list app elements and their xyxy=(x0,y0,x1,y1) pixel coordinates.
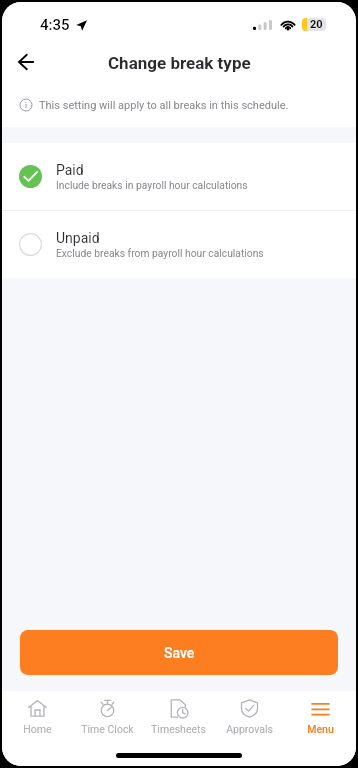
button[interactable]: Time Clock xyxy=(72,691,143,743)
staticText: Save xyxy=(164,645,195,661)
staticText: Time Clock xyxy=(81,723,134,735)
staticText: Change break type xyxy=(108,53,251,73)
staticText: Timesheets xyxy=(151,723,206,735)
staticText: Paid xyxy=(56,162,84,178)
button[interactable]: Approvals xyxy=(214,691,285,743)
button[interactable]: Home xyxy=(2,691,72,743)
staticText: Unpaid xyxy=(56,230,100,246)
button[interactable]: Menu xyxy=(285,691,356,743)
staticText: Menu xyxy=(307,723,334,735)
staticText: Exclude breaks from payroll hour calcula… xyxy=(56,247,264,259)
staticText: Include breaks in payroll hour calculati… xyxy=(56,179,248,191)
staticText: 4:35 xyxy=(40,16,70,34)
button[interactable]: Back xyxy=(10,46,42,78)
staticText: Home xyxy=(23,723,52,735)
button[interactable]: Save xyxy=(20,630,338,675)
button[interactable]: Unpaid xyxy=(2,211,356,278)
button[interactable]: Timesheets xyxy=(143,691,214,743)
staticText: 20 xyxy=(310,18,323,31)
button[interactable]: Paid xyxy=(2,143,356,210)
staticText: Approvals xyxy=(226,723,273,735)
staticText: This setting will apply to all breaks in… xyxy=(39,99,289,112)
